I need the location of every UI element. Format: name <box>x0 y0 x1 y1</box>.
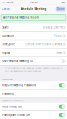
button[interactable]: Done <box>56 7 65 11</box>
staticText: PASSWORD <box>2 78 13 80</box>
button[interactable]: Host Video On <box>0 103 67 111</box>
staticText: •••• Carrier <box>1 1 13 4</box>
button[interactable]: Cancel <box>2 6 10 12</box>
staticText: Schedule Meeting <box>20 7 46 11</box>
staticText: Time Zone <box>2 43 14 46</box>
staticText: 86% <box>61 1 65 4</box>
staticText: 1 hour <box>53 34 62 38</box>
button[interactable]: Participant Video On <box>0 111 67 119</box>
button[interactable]: Duration <box>0 32 67 40</box>
button[interactable]: Use Personal Meeting ID <box>0 57 67 65</box>
button[interactable]: Password <box>0 90 67 98</box>
staticText: If this option is not enabled, a new ran… <box>4 66 62 72</box>
button[interactable]: Starts <box>0 23 67 31</box>
staticText: Cancel <box>2 7 10 11</box>
staticText: Require Meeting Password <box>2 84 36 87</box>
staticText: MEETING OPTIONS <box>2 99 23 102</box>
staticText: Today at 2:00 PM <box>42 26 62 29</box>
staticText: Starts <box>2 26 8 29</box>
staticText: Duration <box>2 34 14 38</box>
button[interactable]: Require Meeting Password <box>0 81 67 89</box>
staticText: 1:36 PM <box>29 1 37 4</box>
staticText: Use Personal Meeting ID <box>2 59 33 63</box>
staticText: Password <box>2 92 14 95</box>
staticText: Participant Video On <box>2 113 30 117</box>
button[interactable]: Repeat <box>0 49 67 57</box>
staticText: Repeat <box>2 51 10 54</box>
staticText: Central Time (US and Canada) <box>25 43 62 46</box>
button[interactable]: Time Zone <box>0 40 67 48</box>
staticText: Never <box>56 51 62 54</box>
staticText: Host Video On <box>2 105 22 108</box>
staticText: Done <box>57 7 64 11</box>
staticText: Sal's Personal Meeting Room <box>3 16 39 19</box>
